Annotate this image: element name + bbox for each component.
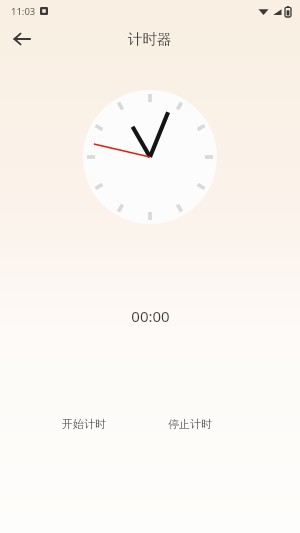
- staticText: 11:03: [11, 5, 36, 18]
- staticText: 00:00: [131, 306, 170, 326]
- staticText: 开始计时: [62, 417, 106, 431]
- staticText: 计时器: [128, 30, 172, 48]
- button[interactable]: Back: [6, 23, 38, 55]
- staticText: 停止计时: [168, 417, 212, 431]
- button[interactable]: 停止计时: [158, 410, 222, 438]
- button[interactable]: 开始计时: [52, 410, 116, 438]
